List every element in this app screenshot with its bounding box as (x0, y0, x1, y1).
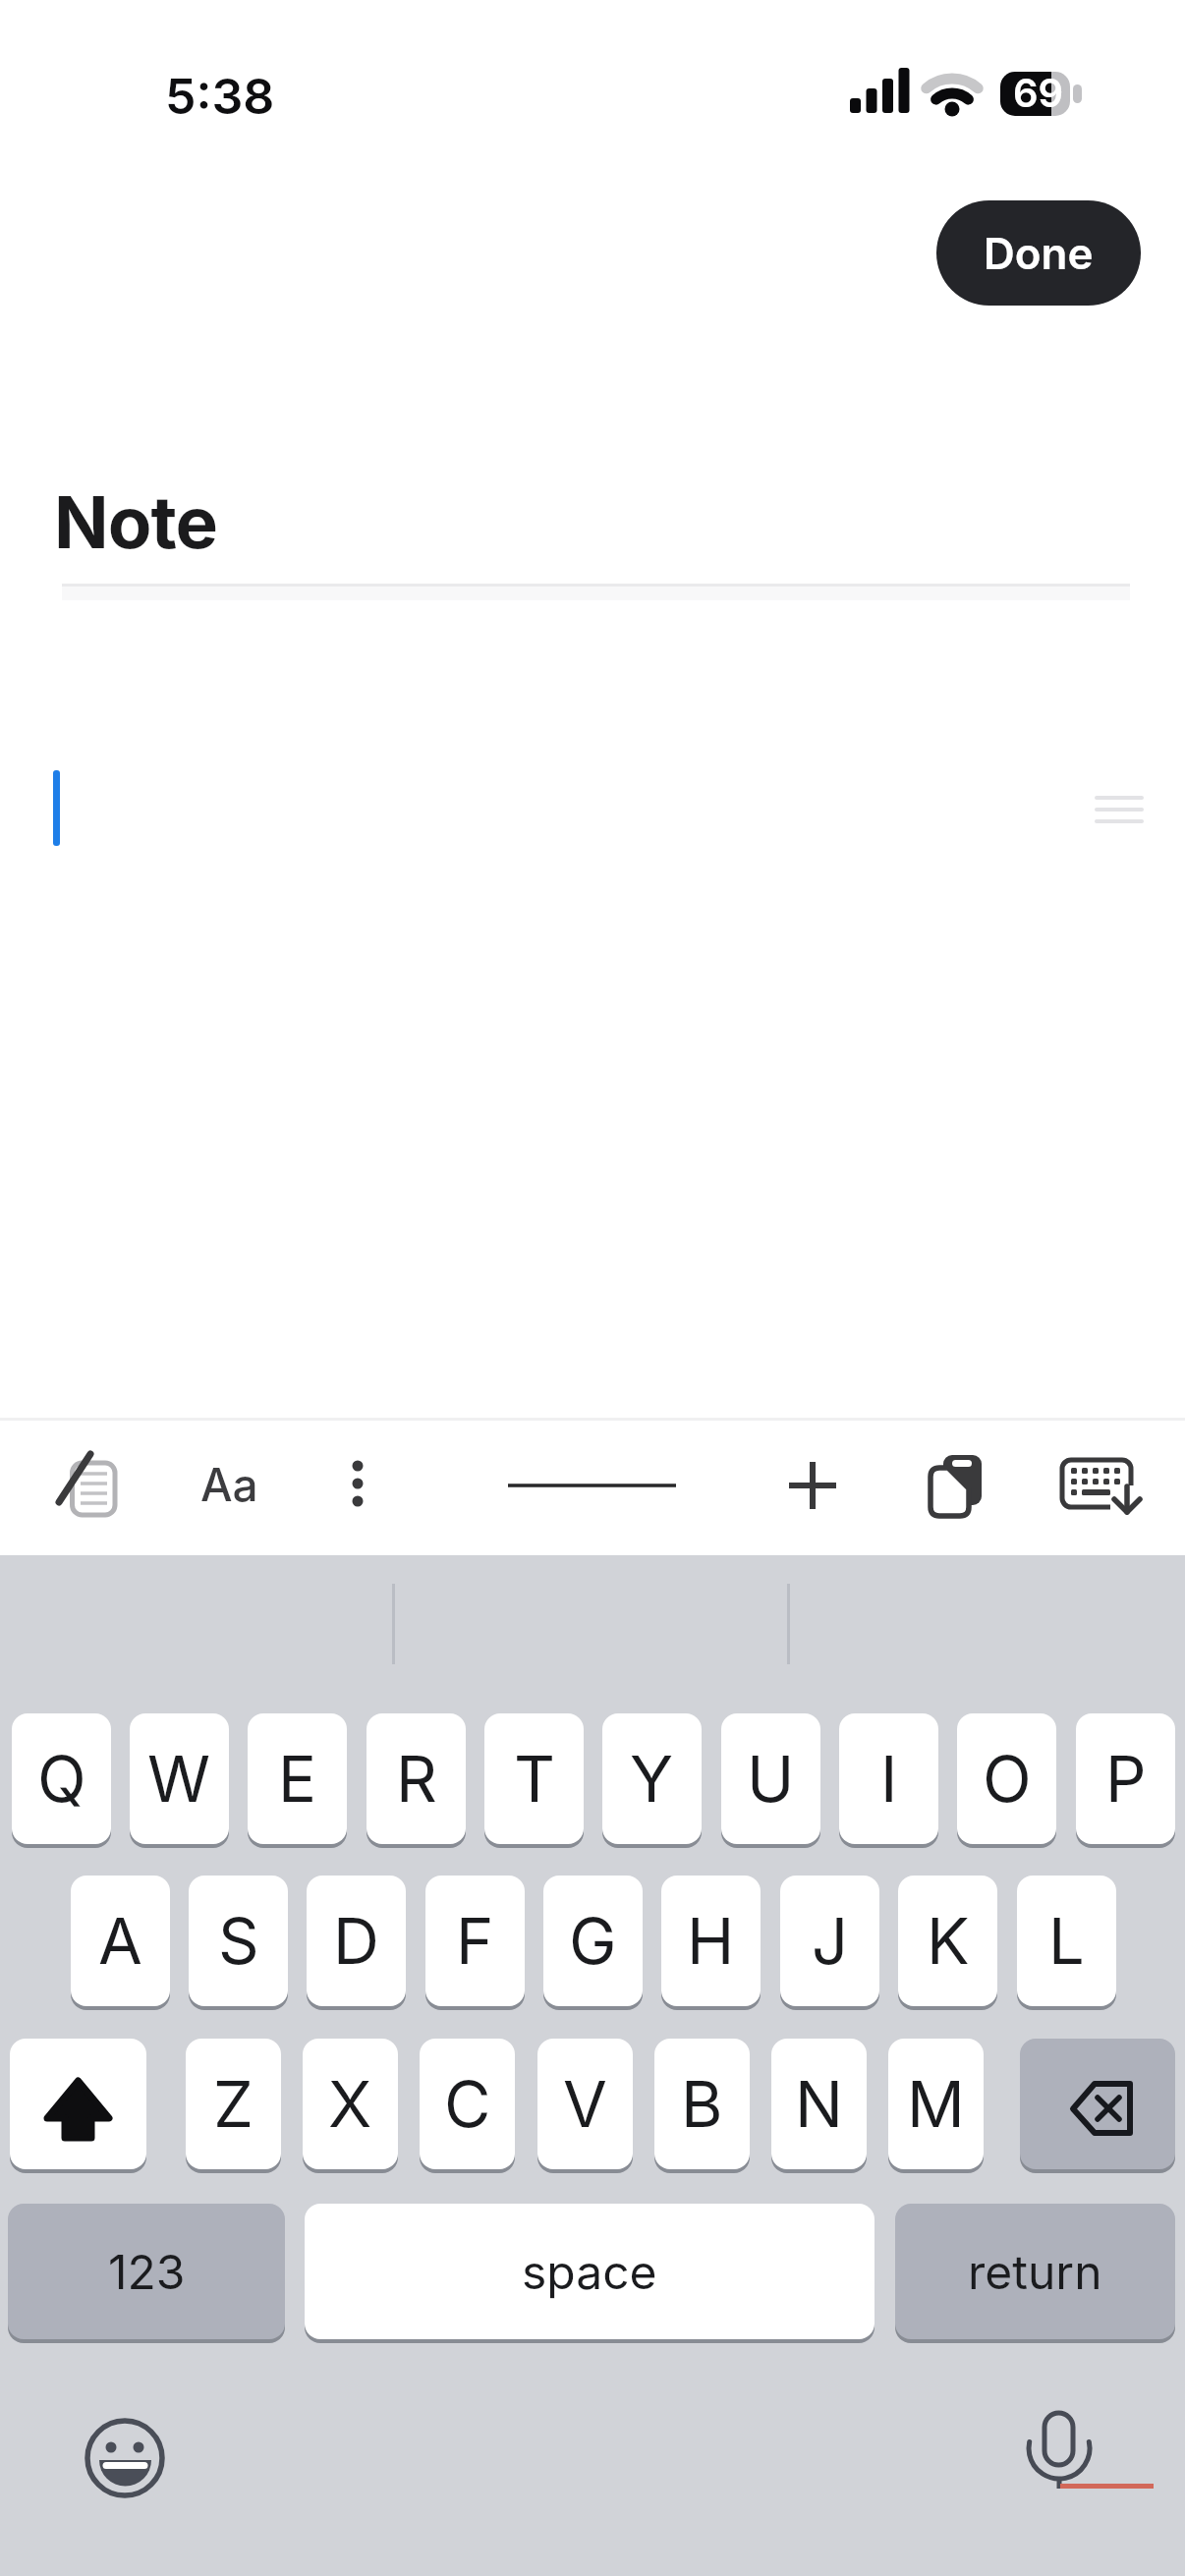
button[interactable]: C (420, 2039, 515, 2169)
button[interactable]: V (537, 2039, 633, 2169)
button[interactable]: S (189, 1876, 288, 2006)
button[interactable] (922, 1444, 992, 1527)
staticText: E (278, 1740, 317, 1818)
button[interactable] (496, 1452, 688, 1517)
staticText: I (880, 1740, 898, 1818)
button[interactable]: F (425, 1876, 525, 2006)
button[interactable]: J (780, 1876, 879, 2006)
button[interactable]: Aa (186, 1452, 272, 1517)
staticText: 123 (108, 2243, 186, 2300)
button[interactable]: space (305, 2204, 875, 2339)
button[interactable]: E (248, 1713, 347, 1844)
staticText: space (522, 2243, 657, 2300)
button[interactable]: I (839, 1713, 938, 1844)
button[interactable]: W (130, 1713, 229, 1844)
staticText: H (687, 1902, 735, 1980)
button[interactable]: M (888, 2039, 984, 2169)
staticText: Done (984, 227, 1094, 279)
staticText: C (444, 2065, 491, 2143)
staticText: A (98, 1902, 142, 1980)
staticText: Y (630, 1740, 674, 1818)
staticText: Note (54, 478, 217, 565)
button[interactable]: B (654, 2039, 750, 2169)
staticText: return (968, 2243, 1102, 2300)
staticText: P (1105, 1740, 1147, 1818)
button[interactable]: Done (936, 200, 1141, 306)
button[interactable]: L (1017, 1876, 1116, 2006)
button[interactable]: D (307, 1876, 406, 2006)
staticText: X (328, 2065, 372, 2143)
button[interactable]: Z (186, 2039, 281, 2169)
staticText: Z (213, 2065, 254, 2143)
button[interactable] (1051, 1448, 1150, 1527)
button[interactable]: 123 (8, 2204, 285, 2339)
staticText: M (907, 2065, 965, 2143)
staticText: U (747, 1740, 795, 1818)
staticText: 69 (1013, 69, 1064, 116)
button[interactable]: R (367, 1713, 466, 1844)
button[interactable]: K (898, 1876, 997, 2006)
button[interactable]: P (1076, 1713, 1175, 1844)
staticText: L (1048, 1902, 1085, 1980)
button[interactable]: U (721, 1713, 820, 1844)
button[interactable]: X (303, 2039, 398, 2169)
staticText: O (983, 1740, 1032, 1818)
button[interactable]: Q (12, 1713, 111, 1844)
button[interactable]: O (957, 1713, 1056, 1844)
button[interactable] (10, 2039, 146, 2169)
button[interactable] (76, 2409, 174, 2507)
button[interactable]: G (543, 1876, 643, 2006)
staticText: V (563, 2065, 607, 2143)
staticText: F (456, 1902, 494, 1980)
staticText: 5:38 (165, 67, 275, 126)
staticText: D (333, 1902, 379, 1980)
button[interactable]: return (895, 2204, 1175, 2339)
staticText: N (795, 2065, 843, 2143)
button[interactable]: A (71, 1876, 170, 2006)
staticText: G (569, 1902, 617, 1980)
staticText: K (927, 1902, 970, 1980)
button[interactable]: N (771, 2039, 867, 2169)
button[interactable]: T (484, 1713, 584, 1844)
staticText: R (396, 1740, 437, 1818)
staticText: B (681, 2065, 723, 2143)
button[interactable] (43, 1440, 132, 1529)
staticText: T (514, 1740, 555, 1818)
button[interactable] (1010, 2397, 1108, 2495)
staticText: S (218, 1902, 259, 1980)
staticText: Aa (200, 1457, 258, 1512)
button[interactable]: H (661, 1876, 761, 2006)
button[interactable] (1020, 2039, 1175, 2169)
staticText: Q (37, 1740, 86, 1818)
button[interactable] (781, 1452, 846, 1517)
button[interactable]: Y (602, 1713, 702, 1844)
staticText: W (147, 1740, 211, 1818)
button[interactable] (328, 1452, 387, 1517)
staticText: J (812, 1902, 849, 1980)
